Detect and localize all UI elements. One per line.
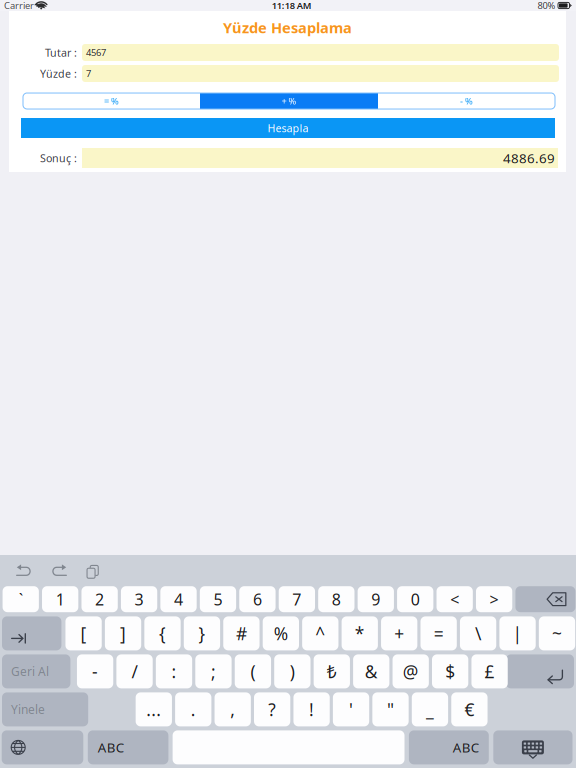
- button[interactable]: Yinele: [2, 692, 88, 726]
- button[interactable]: !: [293, 692, 330, 726]
- button[interactable]: Delete: [515, 586, 575, 612]
- staticText: $: [445, 660, 455, 683]
- button[interactable]: ABC: [88, 730, 168, 764]
- staticText: |: [512, 622, 522, 645]
- staticText: :: [171, 660, 176, 683]
- button[interactable]: ': [333, 692, 369, 726]
- staticText: *: [355, 622, 365, 645]
- staticText: Yinele: [11, 701, 45, 717]
- button[interactable]: Tab: [2, 616, 61, 650]
- button[interactable]: *: [342, 616, 378, 650]
- staticText: 2: [95, 589, 104, 610]
- button[interactable]: ]: [105, 616, 141, 650]
- button[interactable]: -: [77, 654, 113, 688]
- button[interactable]: 3: [121, 586, 157, 612]
- staticText: 5: [213, 589, 222, 610]
- button[interactable]: /: [116, 654, 153, 688]
- button[interactable]: :: [156, 654, 192, 688]
- button[interactable]: = %: [23, 93, 200, 109]
- button[interactable]: }: [184, 616, 220, 650]
- staticText: 9: [371, 589, 380, 610]
- staticText: >: [490, 589, 499, 610]
- button[interactable]: ...: [136, 692, 172, 726]
- staticText: ): [290, 660, 295, 683]
- button[interactable]: ^: [302, 616, 338, 650]
- button[interactable]: ): [274, 654, 310, 688]
- button[interactable]: Return: [506, 654, 574, 688]
- button[interactable]: Redo: [43, 555, 73, 586]
- button[interactable]: Undo: [10, 555, 40, 586]
- button[interactable]: ": [372, 692, 409, 726]
- button[interactable]: £: [471, 654, 508, 688]
- staticText: %: [274, 622, 288, 645]
- button[interactable]: 8: [318, 586, 354, 612]
- staticText: Geri Al: [11, 663, 49, 679]
- staticText: ₺: [327, 660, 337, 683]
- button[interactable]: |: [499, 616, 536, 650]
- button[interactable]: =: [420, 616, 457, 650]
- button[interactable]: #: [223, 616, 259, 650]
- button[interactable]: Hide keyboard: [493, 730, 572, 764]
- staticText: ;: [211, 660, 216, 683]
- button[interactable]: ?: [254, 692, 290, 726]
- staticText: ]: [120, 622, 126, 645]
- button[interactable]: &: [353, 654, 389, 688]
- staticText: Carrier: [4, 0, 34, 12]
- button[interactable]: 9: [358, 586, 394, 612]
- staticText: 80%: [537, 0, 555, 12]
- staticText: = %: [104, 95, 119, 107]
- button[interactable]: - %: [378, 93, 555, 109]
- button[interactable]: 6: [239, 586, 276, 612]
- button[interactable]: _: [412, 692, 448, 726]
- button[interactable]: Next keyboard: [2, 730, 83, 764]
- staticText: =: [434, 622, 444, 645]
- button[interactable]: €: [451, 692, 487, 726]
- button[interactable]: 5: [200, 586, 236, 612]
- staticText: ^: [315, 622, 325, 645]
- staticText: +: [394, 622, 404, 645]
- button[interactable]: ,: [215, 692, 251, 726]
- button[interactable]: [: [65, 616, 102, 650]
- staticText: 7: [292, 589, 301, 610]
- staticText: @: [403, 660, 419, 683]
- staticText: Sonuç :: [40, 151, 77, 165]
- button[interactable]: >: [476, 586, 512, 612]
- staticText: ...: [146, 698, 161, 721]
- button[interactable]: Paste: [76, 555, 106, 586]
- button[interactable]: <: [436, 586, 473, 612]
- button[interactable]: ~: [539, 616, 575, 650]
- button[interactable]: 2: [81, 586, 118, 612]
- staticText: .: [191, 698, 196, 721]
- button[interactable]: (: [235, 654, 271, 688]
- button[interactable]: $: [432, 654, 468, 688]
- button[interactable]: {: [144, 616, 181, 650]
- staticText: 7: [86, 67, 91, 80]
- button[interactable]: 1: [42, 586, 78, 612]
- button[interactable]: ABC: [409, 730, 489, 764]
- staticText: [: [81, 622, 87, 645]
- button[interactable]: 4: [160, 586, 197, 612]
- button[interactable]: ₺: [314, 654, 350, 688]
- button[interactable]: `: [3, 586, 39, 612]
- staticText: ~: [552, 622, 562, 645]
- button[interactable]: Hesapla: [21, 118, 555, 138]
- staticText: _: [426, 698, 434, 721]
- staticText: 3: [135, 589, 144, 610]
- button[interactable]: \: [460, 616, 496, 650]
- staticText: 1: [56, 589, 65, 610]
- button[interactable]: ;: [195, 654, 232, 688]
- button[interactable]: 0: [397, 586, 433, 612]
- staticText: <: [450, 589, 459, 610]
- button[interactable]: %: [263, 616, 299, 650]
- button[interactable]: +: [381, 616, 417, 650]
- button[interactable]: .: [175, 692, 211, 726]
- button[interactable]: + %: [200, 93, 378, 109]
- button[interactable]: Geri Al: [2, 654, 70, 688]
- button[interactable]: [173, 730, 404, 764]
- button[interactable]: 7: [279, 586, 315, 612]
- staticText: !: [309, 698, 314, 721]
- staticText: 4886.69: [503, 149, 555, 167]
- staticText: €: [464, 698, 474, 721]
- staticText: Hesapla: [267, 121, 308, 135]
- button[interactable]: @: [392, 654, 429, 688]
